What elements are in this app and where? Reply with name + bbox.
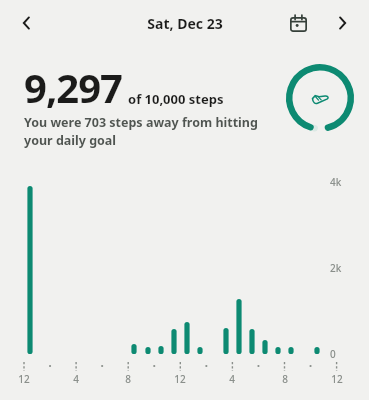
staticText: 12 — [12, 372, 36, 400]
staticText: 8 — [273, 372, 297, 400]
staticText: 4 — [220, 372, 244, 400]
button[interactable]: Step goal progress — [284, 62, 356, 134]
staticText: Sat, Dec 23 — [147, 14, 223, 33]
staticText: 0 — [330, 347, 336, 361]
staticText: of 10,000 steps — [128, 90, 224, 108]
staticText: 4 — [64, 372, 88, 400]
button[interactable]: Sat, Dec 23 — [110, 6, 260, 40]
staticText: 2k — [330, 261, 342, 275]
staticText: 12 — [168, 372, 192, 400]
staticText: 8 — [116, 372, 140, 400]
button[interactable]: Calendar — [281, 6, 315, 40]
staticText: You were 703 steps away from hitting you… — [24, 114, 264, 149]
button[interactable]: Previous day — [10, 6, 44, 40]
staticText: 12 — [325, 372, 349, 400]
staticText: 9,297 — [24, 60, 122, 114]
button[interactable]: Next day — [325, 6, 359, 40]
staticText: 4k — [330, 175, 342, 189]
